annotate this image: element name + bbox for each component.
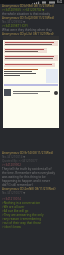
staticText: >any reason i remembering — [2, 217, 41, 221]
button[interactable]: Attached image — [3, 36, 59, 128]
staticText: >>341209902 — [2, 163, 21, 167]
staticText: >>341210014 — [2, 197, 21, 201]
staticText: >We are all over — [2, 205, 25, 209]
staticText: Anonymous (ID:9rT4) 08/11/21(Wed) — [2, 151, 54, 155]
staticText: happening to happen and it never — [2, 179, 50, 183]
staticText: No.341209902 ▼ — [2, 20, 26, 24]
staticText: >i don't know — [2, 225, 21, 229]
staticText: >>341209655 >>341209702 ▼ — [2, 8, 45, 12]
staticText: Anonymous (ID:kH8d) 08/11/21(Wed) — [2, 4, 55, 8]
staticText: 8:42 — [57, 0, 63, 4]
staticText: the whole situation is that nobody — [2, 12, 50, 16]
staticText: >>341209871 (OP) — [2, 24, 28, 28]
staticText: No.341210077 ▼ — [2, 191, 26, 195]
staticText: >They are answering the only — [2, 213, 44, 217]
staticText: Anonymous (ID:pL3v) 08/11/21(Wed) — [2, 32, 54, 36]
staticText: >Nothing in a conversation — [2, 201, 41, 205]
staticText: No.341210014 ▼ — [2, 155, 26, 159]
staticText: Anonymous (ID:2mN8) 08/11/21(Wed) — [2, 187, 56, 191]
staticText: Anonymous (ID:7xQ2) 08/11/21(Wed) — [2, 16, 55, 20]
staticText: did? (I still remember) — [2, 183, 33, 187]
staticText: was waiting for this thing to be — [2, 175, 46, 179]
staticText: They tell the truth by accident all of — [2, 167, 52, 171]
staticText: >All our like will go — [2, 209, 29, 213]
staticText: Quoted By: >>341210077 — [2, 159, 38, 163]
staticText: What were they thinking when they — [2, 28, 52, 32]
staticText: >out of their way that those — [2, 221, 42, 225]
staticText: the time. Remember when everybody — [2, 171, 55, 175]
